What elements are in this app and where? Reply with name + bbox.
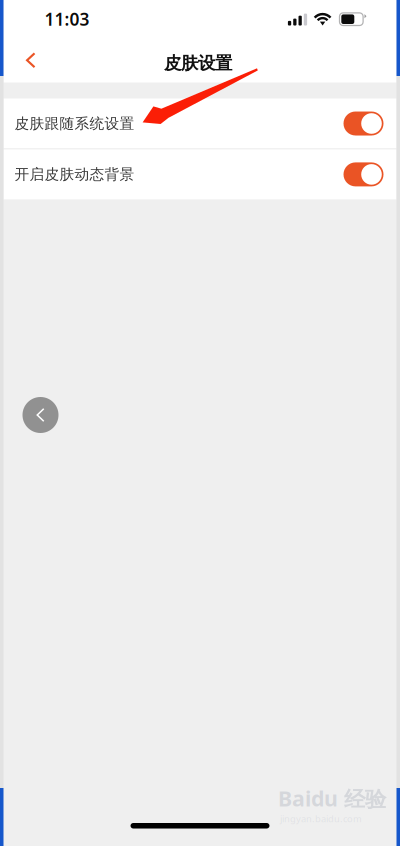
button[interactable]: 皮肤跟随系统设置 (3, 98, 396, 148)
button[interactable]: 开启皮肤动态背景 (3, 149, 396, 199)
staticText: 皮肤跟随系统设置 (14, 114, 134, 132)
staticText: 11:03 (44, 7, 89, 30)
staticText: jingyan.baidu.com (280, 812, 362, 825)
staticText: Baidu 经验 (278, 784, 386, 812)
staticText: 开启皮肤动态背景 (14, 165, 134, 183)
button[interactable]: 返回 (22, 397, 58, 433)
button[interactable]: 返回 (3, 38, 50, 82)
staticText: 皮肤设置 (164, 53, 232, 74)
